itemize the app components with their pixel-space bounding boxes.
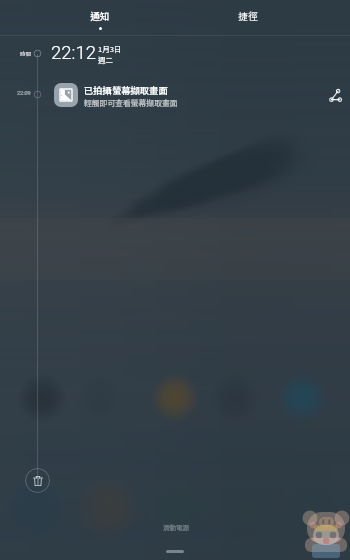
- staticText: 22:12: [51, 42, 96, 64]
- staticText: 1月3日: [98, 43, 122, 54]
- staticText: 捷徑: [212, 9, 284, 23]
- staticText: 22:09: [17, 90, 31, 96]
- button[interactable]: 清除全部通知: [25, 468, 50, 493]
- staticText: 週二: [98, 54, 113, 65]
- staticText: 滑動電源: [163, 522, 189, 531]
- button[interactable]: 分享: [323, 83, 347, 107]
- button[interactable]: 通知: [64, 9, 136, 30]
- staticText: 時間: [20, 50, 32, 58]
- staticText: 輕觸即可查看螢幕擷取畫面: [84, 97, 178, 108]
- staticText: 已拍攝螢幕擷取畫面: [84, 83, 168, 96]
- staticText: 通知: [64, 9, 136, 23]
- button[interactable]: 捷徑: [212, 9, 284, 23]
- button[interactable]: 已拍攝螢幕擷取畫面: [0, 79, 350, 111]
